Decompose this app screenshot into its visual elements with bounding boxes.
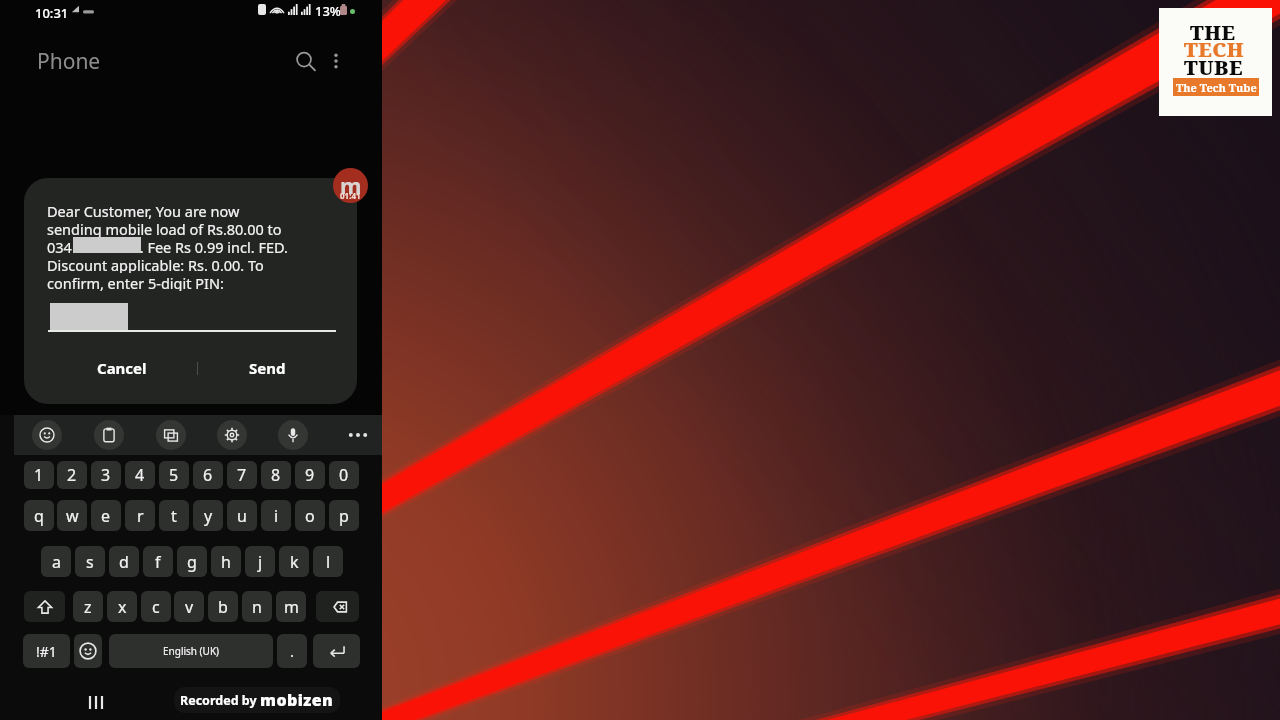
staticText: 01:41 — [340, 190, 361, 201]
staticText: e — [101, 505, 111, 527]
staticText: t — [171, 505, 177, 527]
staticText: Cancel — [97, 358, 147, 378]
button[interactable]: Recording indicator — [333, 168, 368, 203]
staticText: Phone — [37, 47, 101, 76]
button[interactable]: t — [159, 500, 189, 531]
button[interactable]: e — [91, 500, 121, 531]
button[interactable]: y — [193, 500, 223, 531]
button[interactable]: m — [276, 591, 306, 622]
button[interactable]: . — [277, 634, 307, 668]
staticText: g — [187, 551, 197, 573]
button[interactable]: a — [41, 546, 71, 577]
staticText: 10:31 — [35, 4, 69, 22]
staticText: v — [185, 596, 194, 618]
button[interactable]: 8 — [261, 461, 291, 489]
button[interactable]: Recent apps — [78, 684, 114, 720]
button[interactable]: d — [109, 546, 139, 577]
button[interactable]: 9 — [295, 461, 325, 489]
staticText: 9 — [305, 464, 315, 486]
button[interactable]: 3 — [91, 461, 121, 489]
staticText: 0 — [339, 464, 349, 486]
button[interactable]: k — [279, 546, 309, 577]
staticText: TECH — [1184, 36, 1245, 63]
button[interactable]: r — [125, 500, 155, 531]
button[interactable]: u — [227, 500, 257, 531]
staticText: m — [340, 170, 362, 200]
button[interactable]: f — [143, 546, 173, 577]
button[interactable]: English (UK) — [109, 634, 273, 668]
staticText: b — [218, 596, 228, 618]
button[interactable]: g — [177, 546, 207, 577]
button[interactable]: Emoji — [74, 634, 102, 668]
staticText: q — [34, 505, 44, 527]
button[interactable]: 6 — [193, 461, 223, 489]
button[interactable]: More options — [320, 45, 352, 77]
staticText: y — [204, 505, 213, 527]
button[interactable]: Cancel — [71, 353, 173, 383]
staticText: The Tech Tube — [1176, 80, 1257, 95]
staticText: !#1 — [36, 642, 57, 661]
staticText: sending mobile load of Rs.80.00 to — [47, 219, 282, 237]
button[interactable]: 1 — [24, 461, 54, 489]
button[interactable]: b — [208, 591, 238, 622]
staticText: l — [326, 551, 331, 573]
staticText: n — [252, 596, 262, 618]
staticText: m — [284, 596, 299, 618]
button[interactable]: 0 — [329, 461, 359, 489]
button[interactable]: Stickers — [156, 420, 186, 450]
button[interactable]: Voice input — [278, 420, 308, 450]
button[interactable]: n — [242, 591, 272, 622]
button[interactable]: 2 — [57, 461, 87, 489]
staticText: w — [66, 505, 79, 527]
staticText: TUBE — [1184, 54, 1243, 81]
staticText: u — [237, 505, 247, 527]
staticText: k — [290, 551, 299, 573]
button[interactable]: Settings — [217, 420, 247, 450]
button[interactable]: h — [211, 546, 241, 577]
button[interactable]: Clipboard — [94, 420, 124, 450]
staticText: 034 . Fee Rs 0.99 incl. FED. — [47, 237, 288, 255]
staticText: s — [86, 551, 94, 573]
staticText: 7 — [237, 464, 247, 486]
button[interactable]: Enter — [313, 634, 360, 668]
button[interactable]: o — [295, 500, 325, 531]
button[interactable]: q — [24, 500, 54, 531]
staticText: Recorded by — [180, 692, 260, 709]
button[interactable]: i — [261, 500, 291, 531]
button[interactable]: p — [329, 500, 359, 531]
button[interactable]: The Tech Tube channel logo — [1159, 8, 1272, 116]
button[interactable]: Search — [289, 45, 321, 77]
staticText: THE — [1190, 19, 1236, 46]
staticText: c — [152, 596, 160, 618]
button[interactable]: More keyboard options — [343, 420, 373, 450]
staticText: x — [118, 596, 127, 618]
button[interactable]: Backspace — [316, 591, 359, 622]
button[interactable]: Emoji — [32, 420, 62, 450]
button[interactable]: 7 — [227, 461, 257, 489]
button[interactable]: x — [107, 591, 137, 622]
button[interactable]: 5 — [159, 461, 189, 489]
staticText: h — [221, 551, 231, 573]
button[interactable]: 4 — [125, 461, 155, 489]
button[interactable]: z — [73, 591, 103, 622]
button[interactable]: !#1 — [23, 634, 70, 668]
staticText: Dear Customer, You are now — [47, 201, 240, 219]
button[interactable]: v — [174, 591, 204, 622]
staticText: j — [258, 551, 263, 573]
staticText: . — [290, 641, 295, 661]
staticText: i — [274, 505, 279, 527]
button[interactable]: Shift — [24, 591, 65, 622]
staticText: 5 — [169, 464, 179, 486]
button[interactable]: w — [57, 500, 87, 531]
staticText: 6 — [203, 464, 213, 486]
button[interactable]: j — [245, 546, 275, 577]
button[interactable]: s — [75, 546, 105, 577]
staticText: r — [137, 505, 144, 527]
staticText: 2 — [67, 464, 77, 486]
staticText: o — [305, 505, 315, 527]
staticText: d — [119, 551, 129, 573]
staticText: 13% — [315, 2, 341, 20]
button[interactable]: c — [141, 591, 171, 622]
button[interactable]: l — [313, 546, 343, 577]
button[interactable]: Send — [222, 353, 312, 383]
